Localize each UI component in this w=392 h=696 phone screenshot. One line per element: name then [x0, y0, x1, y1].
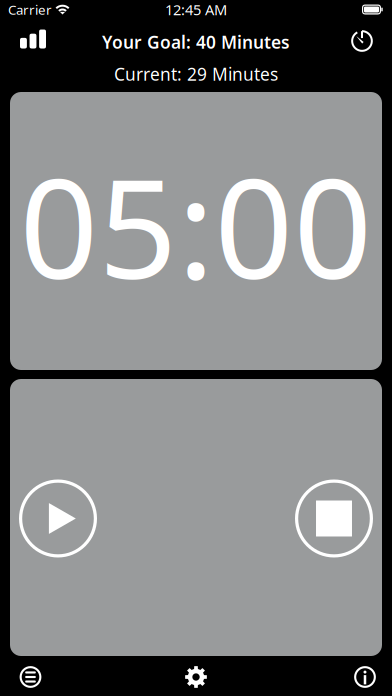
- button[interactable]: Presets: [0, 657, 61, 696]
- button[interactable]: Info: [336, 657, 392, 696]
- staticText: Your Goal: 40 Minutes: [102, 30, 290, 53]
- staticText: Current: 29 Minutes: [114, 62, 278, 85]
- button[interactable]: Statistics: [7, 24, 51, 60]
- button[interactable]: Set timer: [341, 24, 385, 60]
- button[interactable]: Start: [19, 479, 97, 557]
- staticText: 05:00: [19, 134, 372, 317]
- button[interactable]: Settings: [165, 657, 226, 696]
- button[interactable]: Stop: [295, 479, 373, 557]
- staticText: 12:45 AM: [165, 0, 227, 19]
- staticText: Carrier: [8, 1, 52, 18]
